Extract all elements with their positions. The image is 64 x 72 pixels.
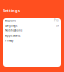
button[interactable]: Notifications [3, 28, 61, 33]
staticText: Account [5, 19, 16, 22]
button[interactable]: Account [3, 18, 61, 23]
staticText: Notifications [5, 29, 22, 32]
staticText: EN [56, 24, 59, 27]
button[interactable]: Language [3, 23, 61, 28]
staticText: Appearance [5, 34, 21, 37]
button[interactable]: Privacy [3, 38, 61, 43]
staticText: Settings [3, 8, 20, 13]
staticText: Pro [54, 19, 59, 22]
staticText: Privacy [5, 39, 13, 42]
staticText: Language [5, 24, 18, 27]
button[interactable]: Appearance [3, 33, 61, 38]
